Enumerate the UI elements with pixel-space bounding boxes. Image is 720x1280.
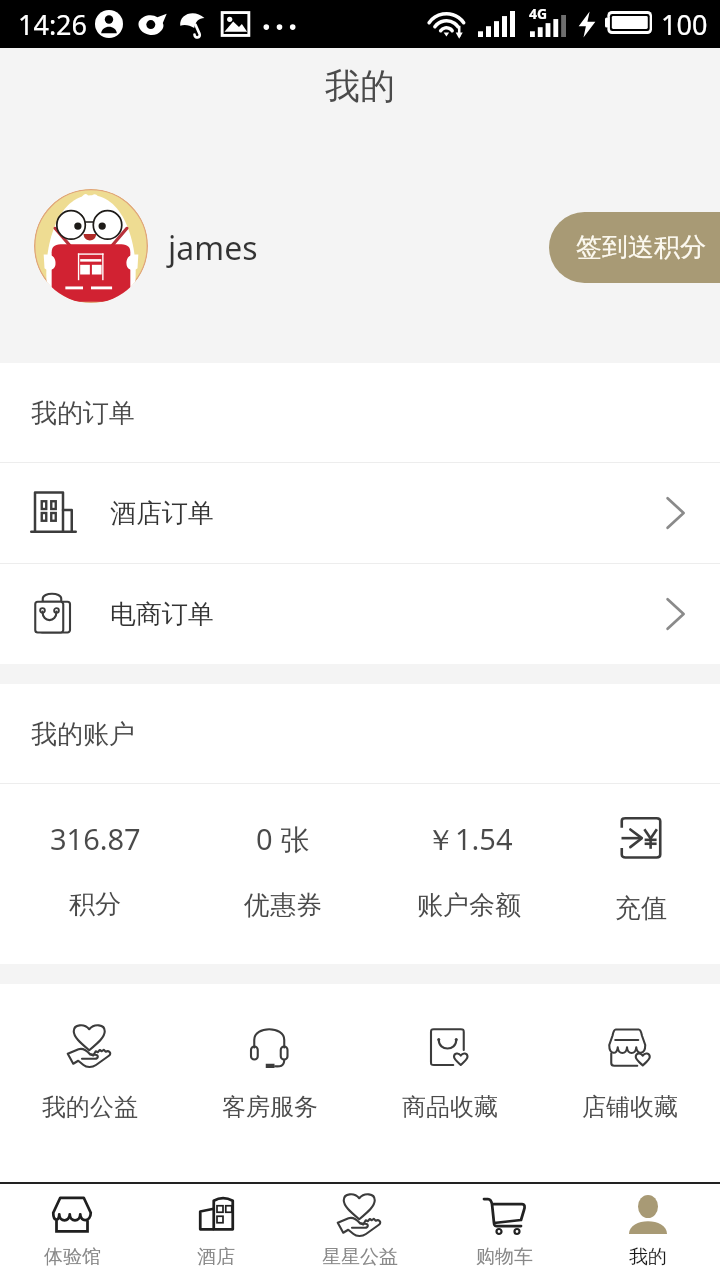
button[interactable]: 店铺收藏 — [540, 1020, 720, 1122]
staticText: james — [168, 226, 258, 270]
staticText: 100 — [661, 6, 708, 43]
other: Open — [658, 598, 690, 630]
button[interactable]: 充值 — [562, 784, 720, 964]
staticText: 电商订单 — [110, 598, 214, 631]
button[interactable]: 酒店订单 — [0, 463, 720, 563]
staticText: 酒店 — [197, 1245, 235, 1269]
staticText: 签到送积分 — [576, 231, 706, 264]
staticText: 店铺收藏 — [582, 1092, 678, 1122]
staticText: 充值 — [615, 892, 667, 925]
staticText: 客房服务 — [222, 1092, 318, 1122]
button[interactable]: 电商订单 — [0, 564, 720, 664]
staticText: 我的 — [325, 64, 395, 108]
button[interactable]: 商品收藏 — [360, 1020, 540, 1122]
button[interactable]: 316.87 — [0, 784, 190, 964]
staticText: 酒店订单 — [110, 497, 214, 530]
other: Open — [658, 497, 690, 529]
button[interactable]: 我的公益 — [0, 1020, 180, 1122]
staticText: 星星公益 — [322, 1245, 398, 1269]
staticText: 我的 — [629, 1245, 667, 1269]
staticText: 商品收藏 — [402, 1092, 498, 1122]
staticText: 我的账户 — [31, 718, 135, 751]
staticText: 我的公益 — [42, 1092, 138, 1122]
staticText: 4G — [529, 4, 548, 23]
button[interactable]: 0 张 — [190, 784, 376, 964]
staticText: 积分 — [69, 888, 121, 921]
button[interactable]: 购物车 — [432, 1184, 576, 1280]
button[interactable]: 体验馆 — [0, 1184, 144, 1280]
staticText: 我的订单 — [31, 397, 135, 430]
staticText: 账户余额 — [417, 889, 521, 922]
button[interactable]: 酒店 — [144, 1184, 288, 1280]
staticText: 0 张 — [256, 819, 310, 859]
button[interactable]: Profile avatar — [34, 189, 148, 303]
staticText: 14:26 — [18, 6, 88, 43]
button[interactable]: 星星公益 — [288, 1184, 432, 1280]
staticText: 316.87 — [50, 819, 141, 858]
button[interactable]: 签到送积分 — [549, 212, 720, 283]
staticText: 购物车 — [476, 1245, 533, 1269]
staticText: ￥1.54 — [426, 819, 513, 859]
staticText: 体验馆 — [44, 1245, 101, 1269]
button[interactable]: ￥1.54 — [376, 784, 562, 964]
staticText: 优惠券 — [244, 889, 322, 922]
button[interactable]: 客房服务 — [180, 1020, 360, 1122]
button[interactable]: 我的 — [576, 1184, 720, 1280]
